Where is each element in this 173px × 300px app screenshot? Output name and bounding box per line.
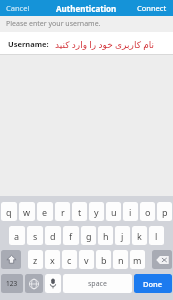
staticText: Authentication: [56, 3, 117, 14]
staticText: a: [14, 230, 20, 242]
button[interactable]: l: [149, 226, 164, 245]
staticText: m: [133, 254, 142, 266]
staticText: q: [6, 206, 12, 218]
staticText: t: [78, 206, 82, 218]
button[interactable]: Change language: [25, 274, 43, 293]
staticText: x: [50, 254, 55, 266]
button[interactable]: q: [1, 202, 17, 221]
staticText: v: [84, 254, 89, 266]
button[interactable]: Backspace: [152, 250, 172, 269]
staticText: o: [145, 206, 151, 218]
button[interactable]: x: [45, 250, 60, 269]
staticText: g: [86, 230, 92, 242]
staticText: Done: [143, 279, 163, 289]
staticText: i: [129, 206, 132, 218]
button[interactable]: m: [130, 250, 145, 269]
button[interactable]: h: [98, 226, 113, 245]
staticText: h: [103, 230, 109, 242]
staticText: b: [101, 254, 107, 266]
button[interactable]: c: [62, 250, 77, 269]
button[interactable]: y: [89, 202, 104, 221]
button[interactable]: u: [106, 202, 121, 221]
button[interactable]: w: [19, 202, 35, 221]
button[interactable]: Cancel: [0, 0, 36, 16]
staticText: e: [42, 206, 48, 218]
button[interactable]: Shift: [1, 250, 21, 269]
staticText: Connect: [137, 3, 167, 13]
staticText: u: [111, 206, 117, 218]
button[interactable]: n: [113, 250, 128, 269]
staticText: z: [33, 254, 38, 266]
button[interactable]: 123: [1, 274, 23, 293]
staticText: نام کاربری خود را وارد کنید: [55, 38, 165, 50]
button[interactable]: e: [37, 202, 53, 221]
button[interactable]: s: [27, 226, 43, 245]
button[interactable]: p: [157, 202, 172, 221]
button[interactable]: d: [45, 226, 61, 245]
button[interactable]: Dictation: [45, 274, 61, 293]
button[interactable]: a: [9, 226, 25, 245]
staticText: y: [94, 206, 99, 218]
staticText: c: [67, 254, 72, 266]
button[interactable]: k: [132, 226, 147, 245]
button[interactable]: Done: [134, 274, 172, 293]
button[interactable]: r: [55, 202, 70, 221]
staticText: w: [23, 206, 31, 218]
staticText: space: [88, 279, 107, 289]
button[interactable]: o: [140, 202, 155, 221]
button[interactable]: i: [123, 202, 138, 221]
button[interactable]: f: [63, 226, 79, 245]
staticText: f: [69, 230, 73, 242]
staticText: Please enter your username.: [6, 19, 101, 29]
staticText: Cancel: [6, 3, 30, 13]
staticText: s: [33, 230, 38, 242]
button[interactable]: v: [79, 250, 94, 269]
button[interactable]: j: [115, 226, 130, 245]
button[interactable]: t: [72, 202, 87, 221]
staticText: j: [121, 230, 124, 242]
button[interactable]: z: [28, 250, 43, 269]
staticText: p: [162, 206, 168, 218]
button[interactable]: Connect: [131, 0, 173, 16]
staticText: n: [118, 254, 124, 266]
staticText: Username:: [8, 39, 49, 49]
button[interactable]: b: [96, 250, 111, 269]
staticText: 123: [6, 279, 18, 288]
staticText: r: [61, 206, 65, 218]
button[interactable]: g: [81, 226, 96, 245]
button[interactable]: Username:: [0, 32, 173, 55]
staticText: k: [137, 230, 142, 242]
staticText: d: [50, 230, 56, 242]
staticText: l: [155, 230, 158, 242]
button[interactable]: space: [63, 274, 132, 293]
